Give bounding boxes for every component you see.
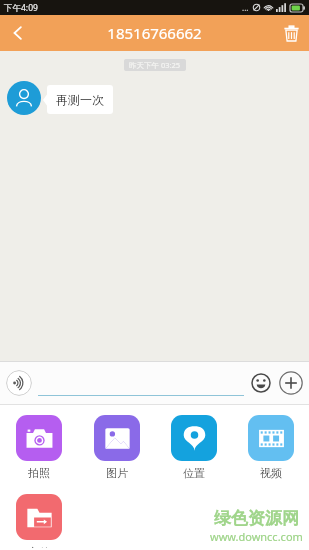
button[interactable]: Voice message (6, 370, 32, 396)
staticText: 再测一次 (56, 92, 104, 107)
button[interactable]: 再测一次 (47, 85, 113, 114)
button[interactable]: Contact avatar (7, 81, 41, 115)
staticText: 位置 (183, 466, 205, 480)
button[interactable]: 拍照 (0, 413, 78, 482)
button[interactable]: Emoji (250, 372, 272, 394)
staticText: 图片 (106, 466, 128, 480)
button[interactable]: 视频 (232, 413, 309, 482)
staticText: 视频 (260, 466, 282, 480)
staticText: 拍照 (28, 466, 50, 480)
button[interactable]: Back (0, 15, 36, 51)
button[interactable]: 位置 (155, 413, 232, 482)
button[interactable]: More attachments (279, 371, 303, 395)
staticText: 文件 (28, 545, 50, 548)
staticText: www.downcc.com (210, 529, 303, 544)
button[interactable]: 图片 (78, 413, 155, 482)
staticText: 下午4:09 (4, 2, 38, 14)
button[interactable] (38, 370, 244, 396)
staticText: 18516766662 (107, 23, 202, 43)
button[interactable]: 文件 (0, 492, 77, 550)
staticText: 昨天下午 03:25 (129, 60, 181, 70)
staticText: 绿色资源网 (214, 508, 299, 529)
staticText: ... (242, 2, 249, 13)
button[interactable]: Delete conversation (273, 15, 309, 51)
